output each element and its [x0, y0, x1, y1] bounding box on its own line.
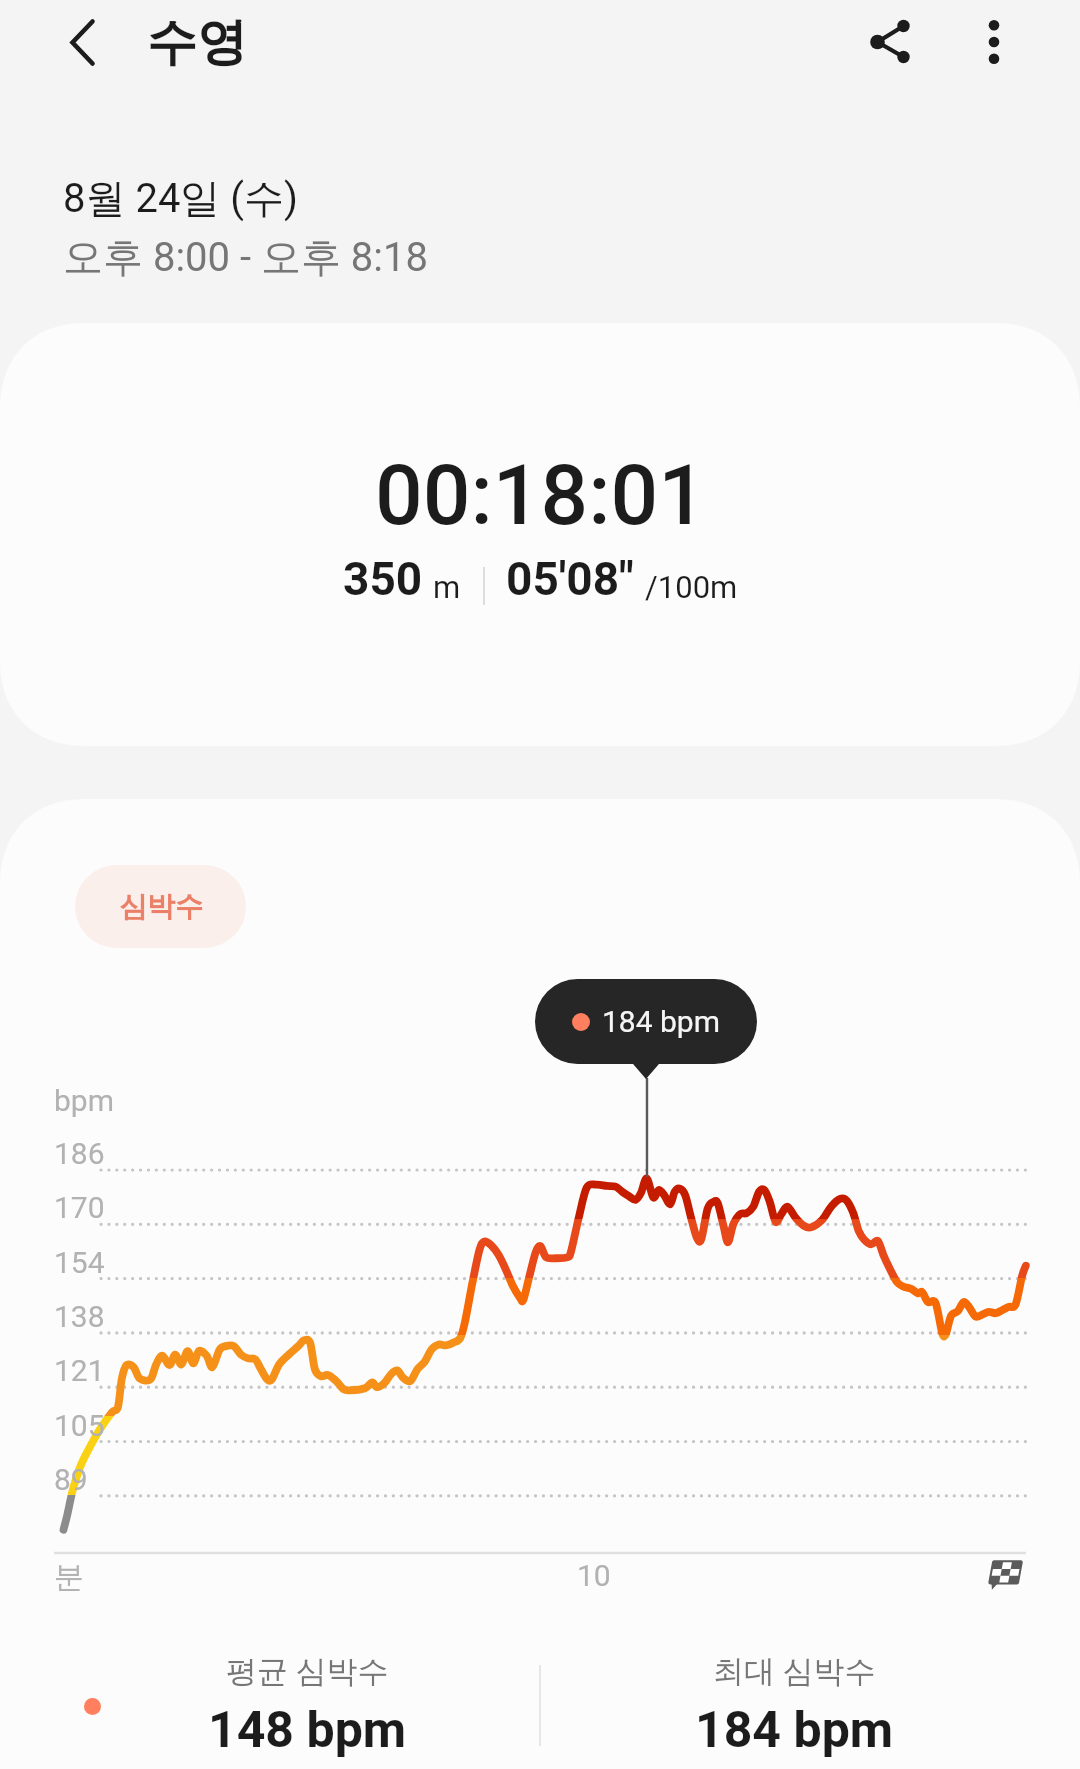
- staticText: 170: [54, 1190, 105, 1225]
- staticText: 00:18:01: [375, 446, 706, 544]
- staticText: 05'08": [506, 552, 634, 606]
- staticText: bpm: [54, 1083, 114, 1118]
- staticText: 121: [54, 1353, 105, 1388]
- staticText: 186: [54, 1136, 105, 1171]
- staticText: 89: [54, 1462, 88, 1497]
- staticText: 184 bpm: [695, 1701, 894, 1760]
- staticText: 오후 8:00 - 오후 8:18: [63, 232, 428, 282]
- staticText: 148 bpm: [208, 1701, 407, 1760]
- staticText: /100m: [645, 569, 738, 605]
- staticText: 350: [343, 552, 423, 606]
- button[interactable]: Share: [846, 0, 934, 84]
- staticText: 수영: [147, 11, 247, 74]
- button[interactable]: More options: [950, 0, 1038, 84]
- staticText: 154: [54, 1245, 105, 1280]
- staticText: 평균 심박수: [226, 1652, 389, 1691]
- staticText: 심박수: [119, 889, 203, 924]
- staticText: 10: [577, 1558, 611, 1593]
- button[interactable]: 00:18:01: [0, 323, 1080, 746]
- staticText: 분: [54, 1558, 84, 1596]
- button[interactable]: Back: [45, 5, 119, 79]
- staticText: m: [433, 569, 461, 605]
- staticText: 최대 심박수: [713, 1652, 876, 1691]
- staticText: 138: [54, 1299, 105, 1334]
- staticText: 8월 24일 (수): [63, 173, 298, 223]
- staticText: 184 bpm: [602, 1004, 721, 1039]
- staticText: 105: [54, 1408, 105, 1443]
- button[interactable]: 심박수: [75, 865, 246, 948]
